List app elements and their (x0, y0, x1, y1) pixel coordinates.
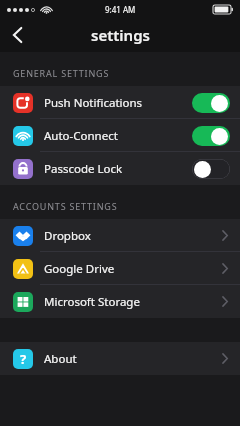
button[interactable]: ? (0, 342, 240, 375)
button[interactable]: Toggle on (192, 93, 230, 113)
button[interactable]: Microsoft Storage (0, 285, 240, 318)
staticText: Passcode Lock (44, 161, 123, 177)
staticText: Auto-Connect (44, 128, 118, 144)
button[interactable]: Toggle on (192, 126, 230, 146)
button[interactable]: Push Notifications (0, 86, 240, 119)
staticText: Microsoft Storage (44, 294, 140, 310)
staticText: About (44, 351, 77, 367)
staticText: 9:41 AM (105, 4, 136, 15)
staticText: GENERAL SETTINGS (13, 67, 110, 79)
button[interactable]: Passcode Lock (0, 152, 240, 185)
staticText: Google Drive (44, 261, 115, 277)
staticText: ACCOUNTS SETTINGS (13, 200, 118, 212)
button[interactable]: Back (0, 18, 34, 52)
staticText: settings (91, 25, 150, 45)
button[interactable]: Toggle off (192, 159, 230, 179)
staticText: Dropbox (44, 228, 91, 244)
button[interactable]: Dropbox (0, 219, 240, 252)
button[interactable]: Auto-Connect (0, 119, 240, 152)
staticText: ? (20, 350, 27, 368)
button[interactable]: Google Drive (0, 252, 240, 285)
staticText: Push Notifications (44, 95, 143, 111)
